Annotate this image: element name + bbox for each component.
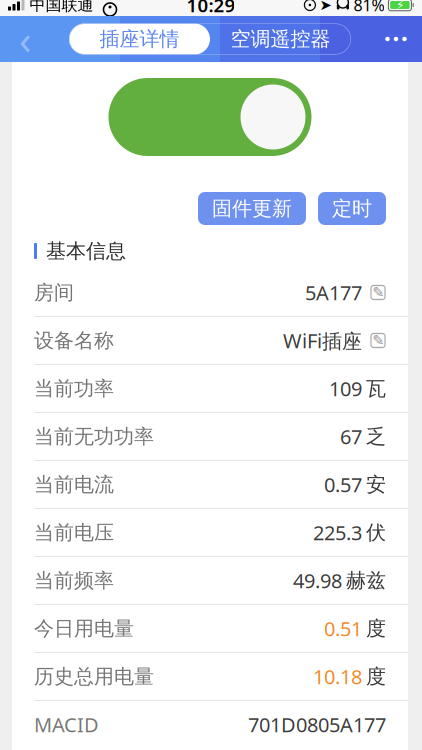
staticText: 当前无功功率 (34, 424, 154, 449)
staticText: 10:29 (186, 0, 235, 17)
staticText: 当前电压 (34, 520, 114, 545)
staticText: 81% (353, 0, 384, 16)
staticText: 安 (366, 472, 386, 497)
button[interactable]: Back (0, 16, 50, 62)
staticText: 赫兹 (346, 568, 386, 593)
staticText: 瓦 (366, 376, 386, 401)
staticText: ➤ (319, 0, 331, 13)
staticText: 0.51 (324, 615, 362, 642)
staticText: 0.57 (324, 471, 362, 498)
staticText: 今日用电量 (34, 616, 134, 641)
staticText: 225.3 (313, 519, 362, 546)
staticText: 度 (366, 664, 386, 689)
button[interactable]: 插座详情 (69, 23, 210, 54)
staticText: 701D0805A177 (248, 711, 386, 738)
staticText: 伏 (366, 520, 386, 545)
staticText: 插座详情 (99, 27, 179, 51)
staticText: 67 (340, 423, 362, 450)
staticText: ⚡︎ (396, 0, 404, 12)
staticText: 基本信息 (46, 239, 126, 263)
staticText: 中国联通 (29, 0, 93, 15)
staticText: 定时 (332, 196, 372, 221)
staticText: 乏 (366, 424, 386, 449)
button[interactable]: 定时 (318, 192, 386, 225)
button[interactable]: Power toggle, on (108, 78, 311, 156)
button[interactable]: More options (370, 16, 422, 62)
staticText: WiFi插座 (283, 327, 362, 354)
staticText: 109 (329, 375, 362, 402)
staticText: 空调遥控器 (230, 27, 330, 51)
staticText: 49.98 (293, 567, 342, 594)
staticText: 房间 (34, 280, 74, 305)
staticText: 度 (366, 616, 386, 641)
staticText: 5A177 (305, 279, 362, 306)
staticText: ✎ (372, 284, 384, 301)
button[interactable]: 固件更新 (198, 192, 306, 225)
staticText: 当前电流 (34, 472, 114, 497)
staticText: 历史总用电量 (34, 664, 154, 689)
staticText: MACID (34, 711, 99, 738)
staticText: 设备名称 (34, 328, 114, 353)
button[interactable]: 空调遥控器 (210, 23, 351, 54)
staticText: ‹ (19, 12, 31, 65)
staticText: 固件更新 (212, 196, 292, 221)
staticText: 当前功率 (34, 376, 114, 401)
staticText: 当前频率 (34, 568, 114, 593)
staticText: 10.18 (313, 663, 362, 690)
staticText: ✎ (372, 332, 384, 349)
